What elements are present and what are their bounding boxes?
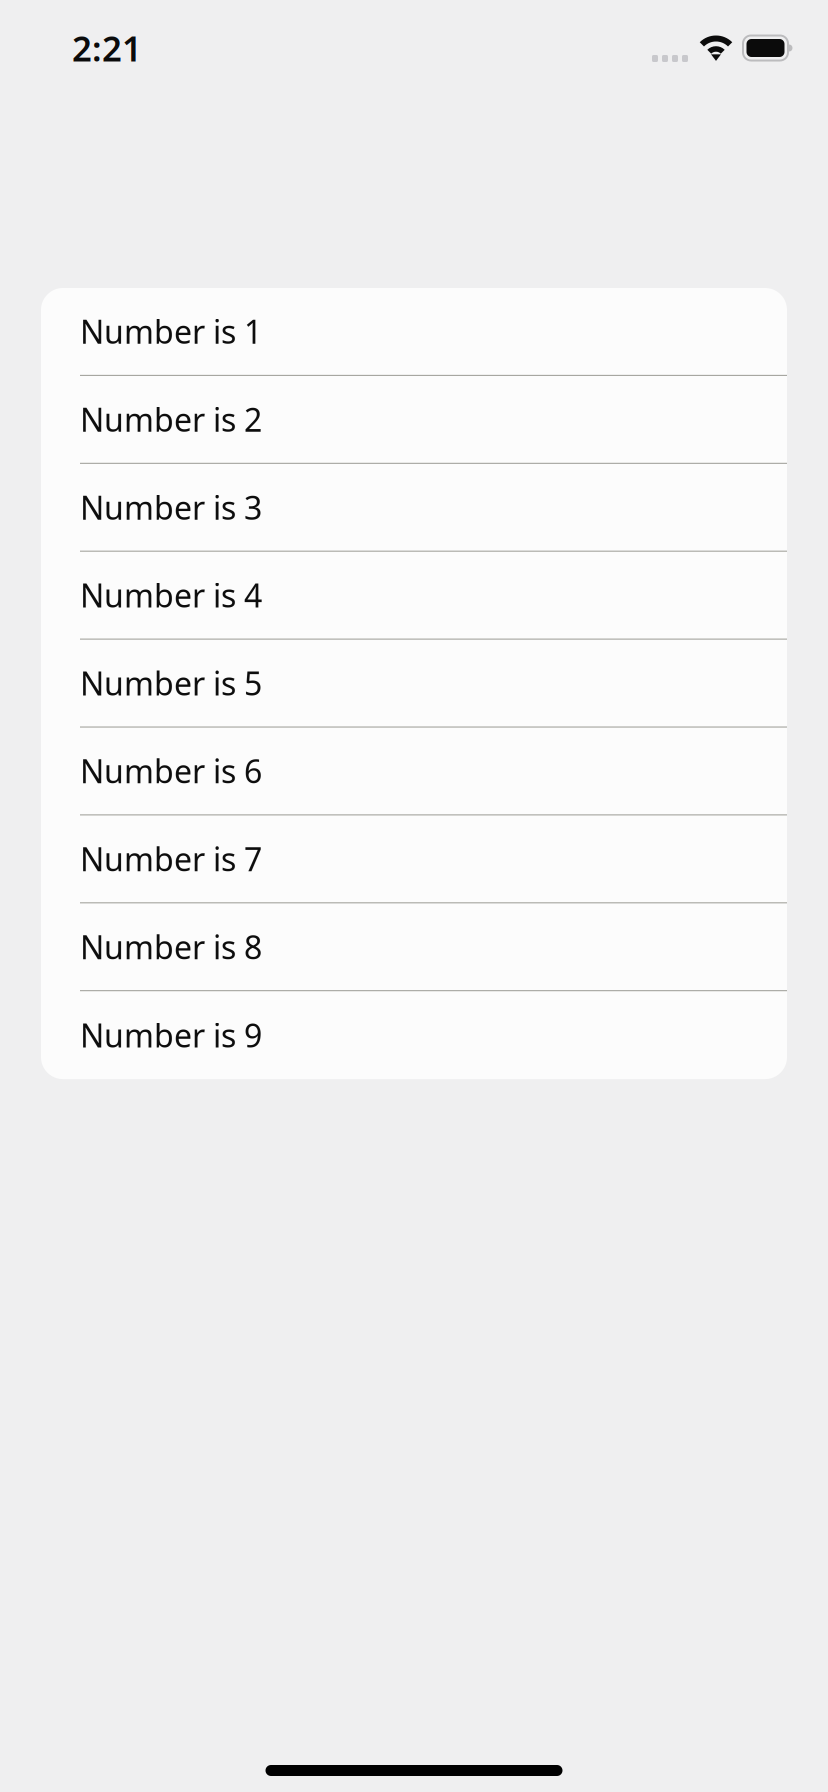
- staticText: Number is 8: [80, 925, 262, 968]
- staticText: Number is 7: [80, 838, 262, 880]
- button[interactable]: Number is 5: [41, 640, 787, 727]
- staticText: Number is 5: [80, 662, 262, 704]
- staticText: Number is 3: [80, 486, 262, 528]
- button[interactable]: Number is 4: [41, 552, 787, 640]
- staticText: Number is 6: [80, 750, 262, 792]
- staticText: Number is 1: [80, 310, 262, 353]
- staticText: Number is 2: [80, 398, 262, 441]
- button[interactable]: Number is 2: [41, 376, 787, 464]
- button[interactable]: Number is 6: [41, 727, 787, 815]
- button[interactable]: Number is 3: [41, 464, 787, 552]
- staticText: Number is 9: [80, 1014, 262, 1056]
- button[interactable]: Number is 9: [41, 991, 787, 1079]
- staticText: 2:21: [72, 25, 142, 71]
- button[interactable]: Number is 1: [41, 288, 787, 376]
- staticText: Number is 4: [80, 574, 262, 616]
- button[interactable]: Number is 8: [41, 903, 787, 991]
- button[interactable]: Number is 7: [41, 815, 787, 903]
